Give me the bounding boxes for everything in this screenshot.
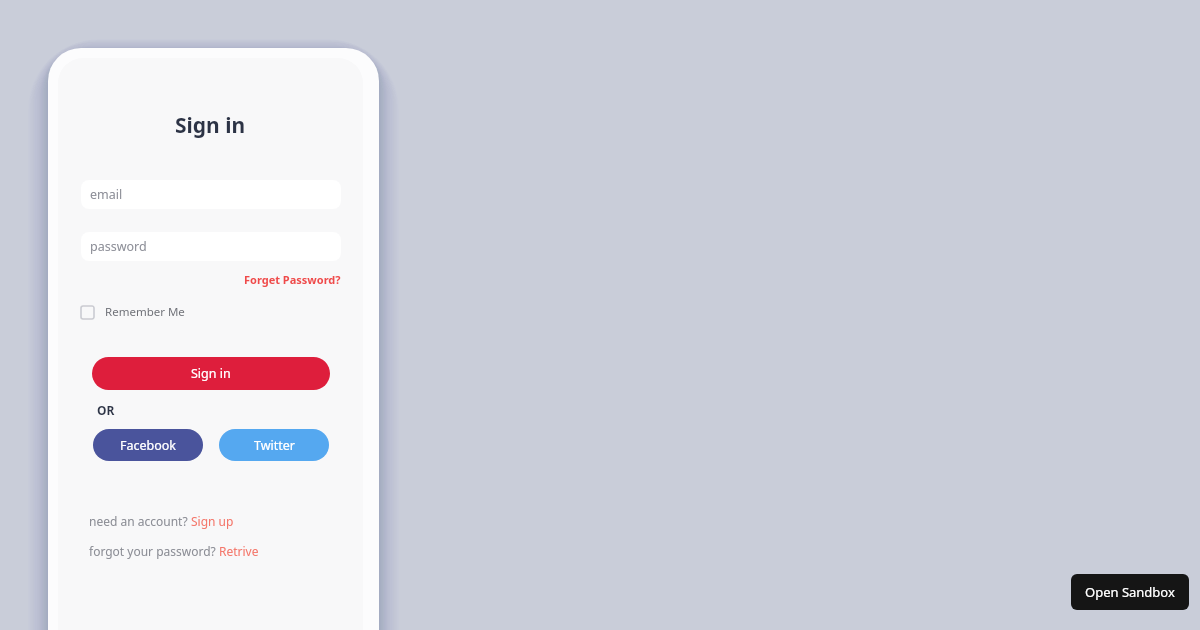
other: Remember Me checkbox	[81, 306, 94, 319]
button[interactable]: email	[81, 180, 341, 209]
staticText: Remember Me	[105, 304, 185, 320]
staticText: need an account?	[89, 513, 191, 529]
button[interactable]: password	[81, 232, 341, 261]
button[interactable]: forgot your password?	[89, 543, 259, 559]
staticText: Open Sandbox	[1085, 583, 1175, 601]
button[interactable]: Remember Me checkbox	[81, 304, 185, 320]
staticText: Sign in	[191, 365, 231, 382]
staticText: Facebook	[120, 437, 177, 454]
staticText: Forget Password?	[244, 272, 341, 287]
button[interactable]: need an account?	[89, 513, 234, 529]
staticText: Sign up	[191, 513, 234, 529]
staticText: Retrive	[219, 543, 259, 559]
button[interactable]: Forget Password?	[244, 272, 341, 287]
staticText: forgot your password?	[89, 543, 219, 559]
staticText: email	[90, 186, 123, 203]
button[interactable]: Open Sandbox	[1071, 574, 1189, 610]
staticText: Twitter	[254, 437, 295, 454]
staticText: OR	[97, 402, 115, 418]
button[interactable]: Sign in	[92, 357, 330, 390]
staticText: password	[90, 238, 147, 255]
button[interactable]: Facebook	[93, 429, 203, 461]
button[interactable]: Twitter	[219, 429, 329, 461]
staticText: Sign in	[175, 111, 246, 140]
